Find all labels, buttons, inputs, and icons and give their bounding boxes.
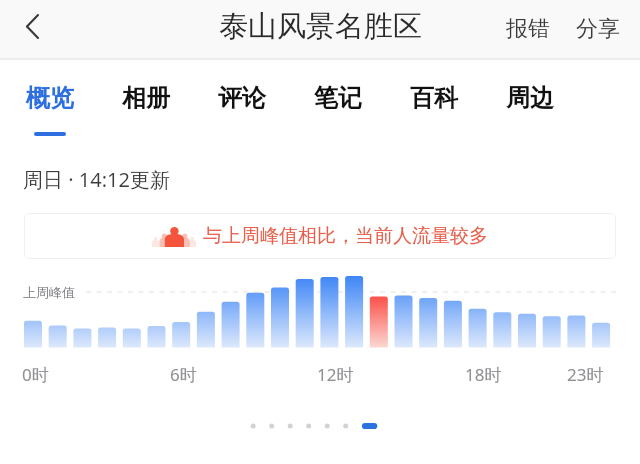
button[interactable]: 相册	[98, 60, 194, 140]
button[interactable]: 分享	[566, 9, 630, 49]
button[interactable]: 评论	[194, 60, 290, 140]
staticText: 周边	[506, 83, 554, 113]
staticText: 12时	[317, 363, 354, 386]
staticText: 评论	[218, 83, 266, 113]
staticText: 概览	[26, 83, 74, 113]
staticText: 与上周峰值相比，当前人流量较多	[203, 224, 488, 248]
button[interactable]: 周边	[482, 60, 578, 140]
button[interactable]: 与上周峰值相比，当前人流量较多	[24, 213, 616, 259]
button[interactable]: 概览	[2, 60, 98, 140]
button[interactable]: 笔记	[290, 60, 386, 140]
staticText: 报错	[506, 15, 550, 43]
staticText: 相册	[122, 83, 170, 113]
button[interactable]	[248, 418, 384, 434]
staticText: 泰山风景名胜区	[219, 8, 422, 45]
staticText: 23时	[567, 363, 604, 386]
staticText: 18时	[465, 363, 502, 386]
staticText: 周日 · 14:12更新	[23, 166, 170, 193]
staticText: 0时	[22, 363, 49, 386]
staticText: 百科	[410, 83, 458, 113]
staticText: 上周峰值	[23, 284, 75, 300]
button[interactable]: 报错	[496, 9, 560, 49]
staticText: 分享	[576, 15, 620, 43]
button[interactable]: Back	[6, 0, 58, 52]
staticText: 6时	[170, 363, 197, 386]
button[interactable]: 百科	[386, 60, 482, 140]
staticText: 笔记	[314, 83, 362, 113]
